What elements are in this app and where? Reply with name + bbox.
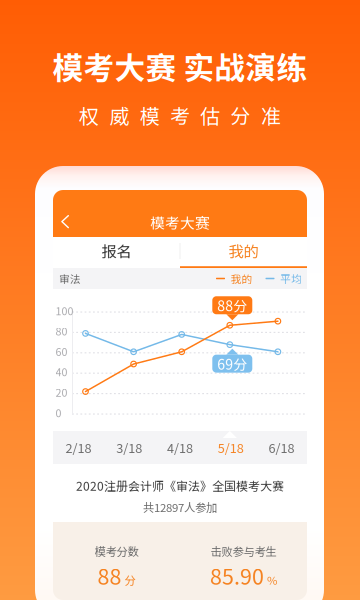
staticText: 模考分数	[94, 543, 138, 559]
staticText: 0	[55, 405, 61, 420]
button[interactable]: Back	[53, 206, 77, 237]
staticText: 分	[124, 572, 135, 588]
staticText: 模考大赛	[150, 211, 210, 233]
staticText: 2020注册会计师《审法》全国模考大赛	[76, 477, 284, 494]
staticText: 报名	[101, 239, 131, 262]
staticText: 88	[97, 560, 121, 591]
staticText: 88分	[217, 295, 247, 315]
staticText: 85.90	[210, 560, 264, 591]
staticText: 5/18	[218, 438, 244, 457]
staticText: 20	[55, 384, 67, 400]
staticText: 100	[55, 303, 73, 318]
staticText: 模考大赛 实战演练	[52, 44, 307, 88]
button[interactable]: 我的	[180, 237, 307, 268]
staticText: 3/18	[116, 438, 142, 457]
staticText: 6/18	[269, 438, 295, 457]
staticText: 2/18	[65, 438, 91, 457]
staticText: 69分	[217, 353, 247, 374]
staticText: 共12897人参加	[143, 499, 217, 515]
staticText: 击败参与考生	[210, 543, 276, 559]
staticText: 40	[55, 364, 67, 379]
staticText: 我的	[228, 239, 258, 262]
staticText: %	[267, 572, 277, 588]
staticText: 平均	[280, 271, 302, 286]
staticText: 审法	[59, 271, 81, 286]
staticText: 60	[55, 344, 67, 359]
button[interactable]: 报名	[53, 237, 180, 268]
staticText: 80	[55, 323, 67, 339]
staticText: 4/18	[167, 438, 193, 457]
staticText: 权威模考估分准	[79, 100, 281, 129]
staticText: 我的	[230, 271, 252, 286]
